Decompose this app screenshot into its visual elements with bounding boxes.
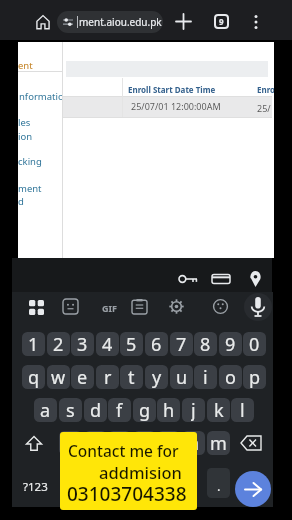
button[interactable]: 9 (214, 14, 229, 29)
staticText: 9 (219, 16, 224, 27)
staticText: v (140, 431, 150, 455)
button[interactable]: o (219, 365, 242, 389)
button[interactable] (212, 272, 230, 286)
staticText: 03103704338 (67, 481, 187, 507)
button[interactable]: g (133, 398, 156, 422)
staticText: l (240, 398, 245, 422)
staticText: p (249, 365, 261, 389)
staticText: les (18, 116, 31, 129)
button[interactable]: w (47, 365, 70, 389)
button[interactable]: 1 (22, 332, 45, 356)
button[interactable]: . (207, 468, 230, 498)
staticText: b (163, 431, 175, 455)
staticText: ion (18, 130, 33, 143)
button[interactable] (29, 300, 44, 315)
button[interactable]: r (96, 365, 119, 389)
staticText: Contact me for (68, 440, 179, 461)
staticText: x (91, 431, 101, 455)
button[interactable] (213, 299, 228, 314)
staticText: 3 (77, 332, 88, 356)
staticText: c (115, 431, 124, 455)
button[interactable]: z (59, 431, 82, 455)
button[interactable]: a (34, 398, 57, 422)
staticText: d (18, 195, 24, 208)
staticText: n (188, 431, 200, 455)
button[interactable]: v (133, 431, 156, 455)
button[interactable]: 5 (120, 332, 143, 356)
button[interactable] (251, 297, 265, 317)
button[interactable]: ?123 (23, 479, 48, 495)
staticText: . (217, 477, 221, 495)
button[interactable] (132, 299, 147, 314)
staticText: Enroll Start Date Time (128, 84, 216, 95)
staticText: f (116, 398, 123, 422)
staticText: e (77, 365, 88, 389)
staticText: ment.aiou.edu.pk (79, 15, 162, 29)
button[interactable]: 4 (96, 332, 119, 356)
staticText: a (40, 398, 51, 422)
button[interactable]: 9 (219, 332, 242, 356)
button[interactable] (251, 14, 261, 30)
staticText: g (139, 398, 151, 422)
staticText: o (225, 365, 236, 389)
button[interactable]: i (194, 365, 217, 389)
button[interactable]: l (231, 398, 254, 422)
staticText: nformation (19, 90, 62, 103)
button[interactable]: f (108, 398, 131, 422)
staticText: z (66, 431, 75, 455)
staticText: 6 (151, 332, 162, 356)
staticText: Enroll (257, 84, 274, 95)
staticText: addmision (99, 461, 182, 483)
staticText: 25/07/01 12:00:00AM (131, 100, 221, 112)
button[interactable] (178, 271, 198, 287)
button[interactable]: n (182, 431, 205, 455)
staticText: m (210, 431, 227, 455)
button[interactable]: y (145, 365, 168, 389)
button[interactable]: x (84, 431, 107, 455)
button[interactable]: 6 (145, 332, 168, 356)
staticText: 7 (176, 332, 187, 356)
button[interactable]: 2 (47, 332, 70, 356)
button[interactable]: 8 (194, 332, 217, 356)
button[interactable]: u (170, 365, 193, 389)
button[interactable]: GIF (102, 302, 117, 314)
button[interactable] (35, 14, 51, 30)
staticText: 9 (225, 332, 236, 356)
staticText: ment (18, 182, 42, 195)
staticText: 5 (126, 332, 137, 356)
button[interactable]: e (71, 365, 94, 389)
button[interactable]: ment.aiou.edu.pk (57, 11, 163, 33)
button[interactable]: s (59, 398, 82, 422)
button[interactable] (235, 471, 271, 507)
button[interactable]: k (207, 398, 230, 422)
staticText: 0 (249, 332, 260, 356)
button[interactable]: m (207, 431, 230, 455)
button[interactable] (63, 299, 78, 314)
button[interactable]: q (22, 365, 45, 389)
staticText: s (66, 398, 75, 422)
staticText: i (203, 365, 208, 389)
button[interactable]: b (157, 431, 180, 455)
button[interactable] (169, 299, 184, 314)
button[interactable]: c (108, 431, 131, 455)
staticText: h (163, 398, 175, 422)
staticText: 2 (53, 332, 64, 356)
button[interactable]: p (243, 365, 266, 389)
button[interactable]: j (182, 398, 205, 422)
button[interactable] (241, 436, 261, 450)
button[interactable]: 3 (71, 332, 94, 356)
button[interactable] (25, 435, 43, 453)
staticText: r (104, 365, 112, 389)
staticText: t (128, 365, 135, 389)
staticText: j (191, 398, 196, 422)
button[interactable]: t (120, 365, 143, 389)
staticText: 25/ (257, 102, 271, 114)
button[interactable]: 7 (170, 332, 193, 356)
button[interactable] (249, 271, 262, 287)
button[interactable]: d (84, 398, 107, 422)
button[interactable] (176, 14, 191, 29)
button[interactable]: h (157, 398, 180, 422)
button[interactable] (83, 468, 190, 498)
button[interactable]: 0 (243, 332, 266, 356)
staticText: q (28, 365, 40, 389)
